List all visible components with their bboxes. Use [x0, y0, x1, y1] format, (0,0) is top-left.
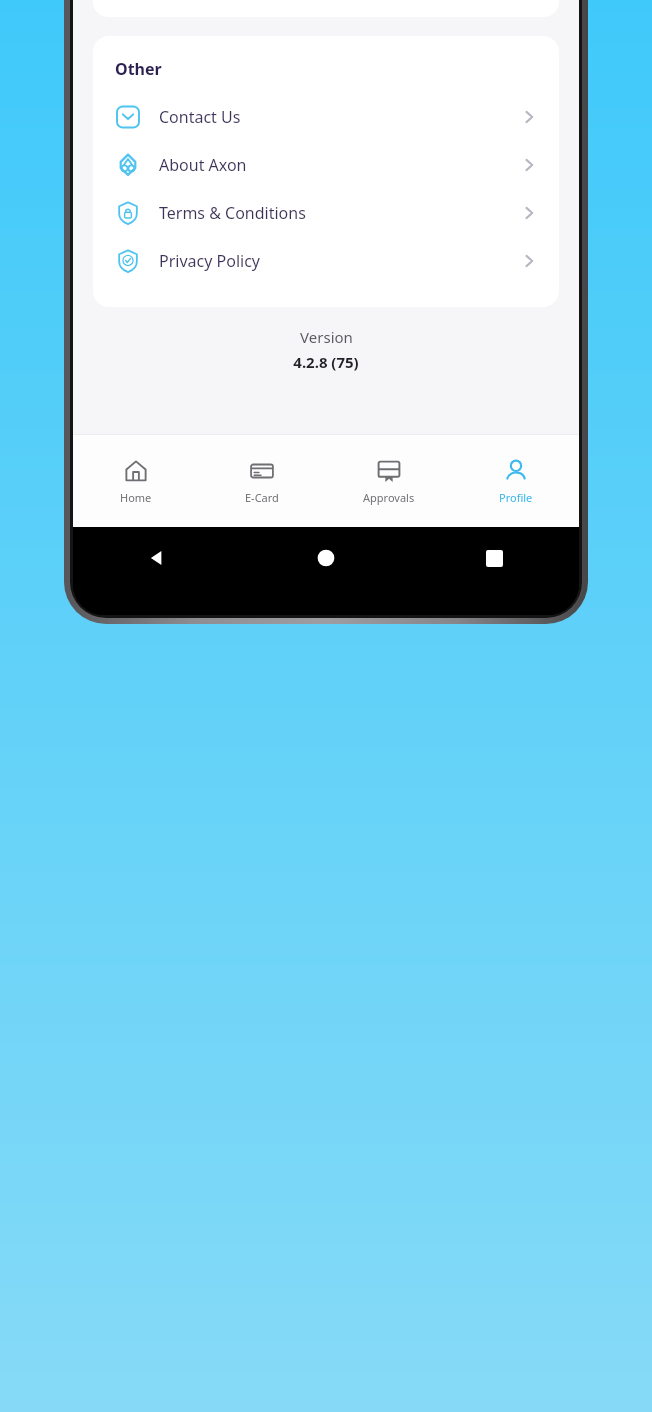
- button[interactable]: Home: [73, 435, 199, 527]
- button[interactable]: Approvals: [325, 435, 452, 527]
- button[interactable]: E-Card: [199, 435, 325, 527]
- button[interactable]: Profile: [452, 435, 579, 527]
- button[interactable]: Back: [73, 541, 241, 575]
- staticText: Privacy Policy: [159, 250, 521, 272]
- staticText: Version: [300, 327, 353, 347]
- staticText: Other: [115, 58, 162, 80]
- button[interactable]: Home: [241, 541, 410, 575]
- staticText: Profile: [499, 490, 533, 505]
- staticText: About Axon: [159, 154, 521, 176]
- staticText: Terms & Conditions: [159, 202, 521, 224]
- button[interactable]: Terms & Conditions: [93, 189, 559, 237]
- staticText: Contact Us: [159, 106, 521, 128]
- staticText: 4.2.8 (75): [293, 352, 359, 372]
- staticText: E-Card: [245, 490, 279, 505]
- staticText: Approvals: [363, 490, 415, 505]
- staticText: Home: [120, 490, 152, 505]
- button[interactable]: Recent apps: [410, 541, 579, 575]
- button[interactable]: About Axon: [93, 141, 559, 189]
- button[interactable]: Contact Us: [93, 93, 559, 141]
- button[interactable]: Privacy Policy: [93, 237, 559, 285]
